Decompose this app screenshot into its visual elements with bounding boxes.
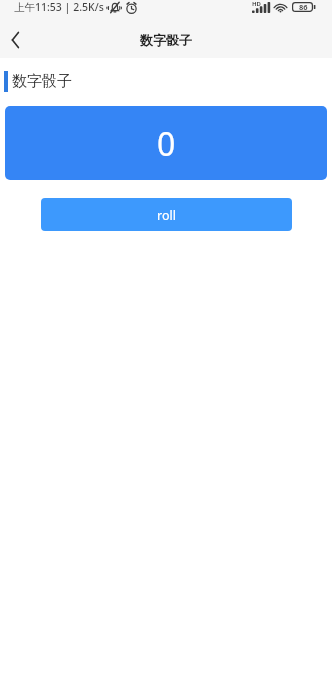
staticText: 数字骰子 (12, 72, 72, 91)
button[interactable]: Back (0, 22, 36, 58)
staticText: roll (157, 207, 176, 224)
staticText: HD (252, 0, 261, 8)
staticText: 86 (299, 2, 308, 12)
button[interactable]: 0 (5, 106, 327, 180)
button[interactable]: roll (41, 198, 292, 231)
staticText: 0 (157, 122, 176, 166)
staticText: 上午11:53 | 2.5K/s (14, 0, 104, 14)
staticText: 数字骰子 (140, 32, 192, 48)
